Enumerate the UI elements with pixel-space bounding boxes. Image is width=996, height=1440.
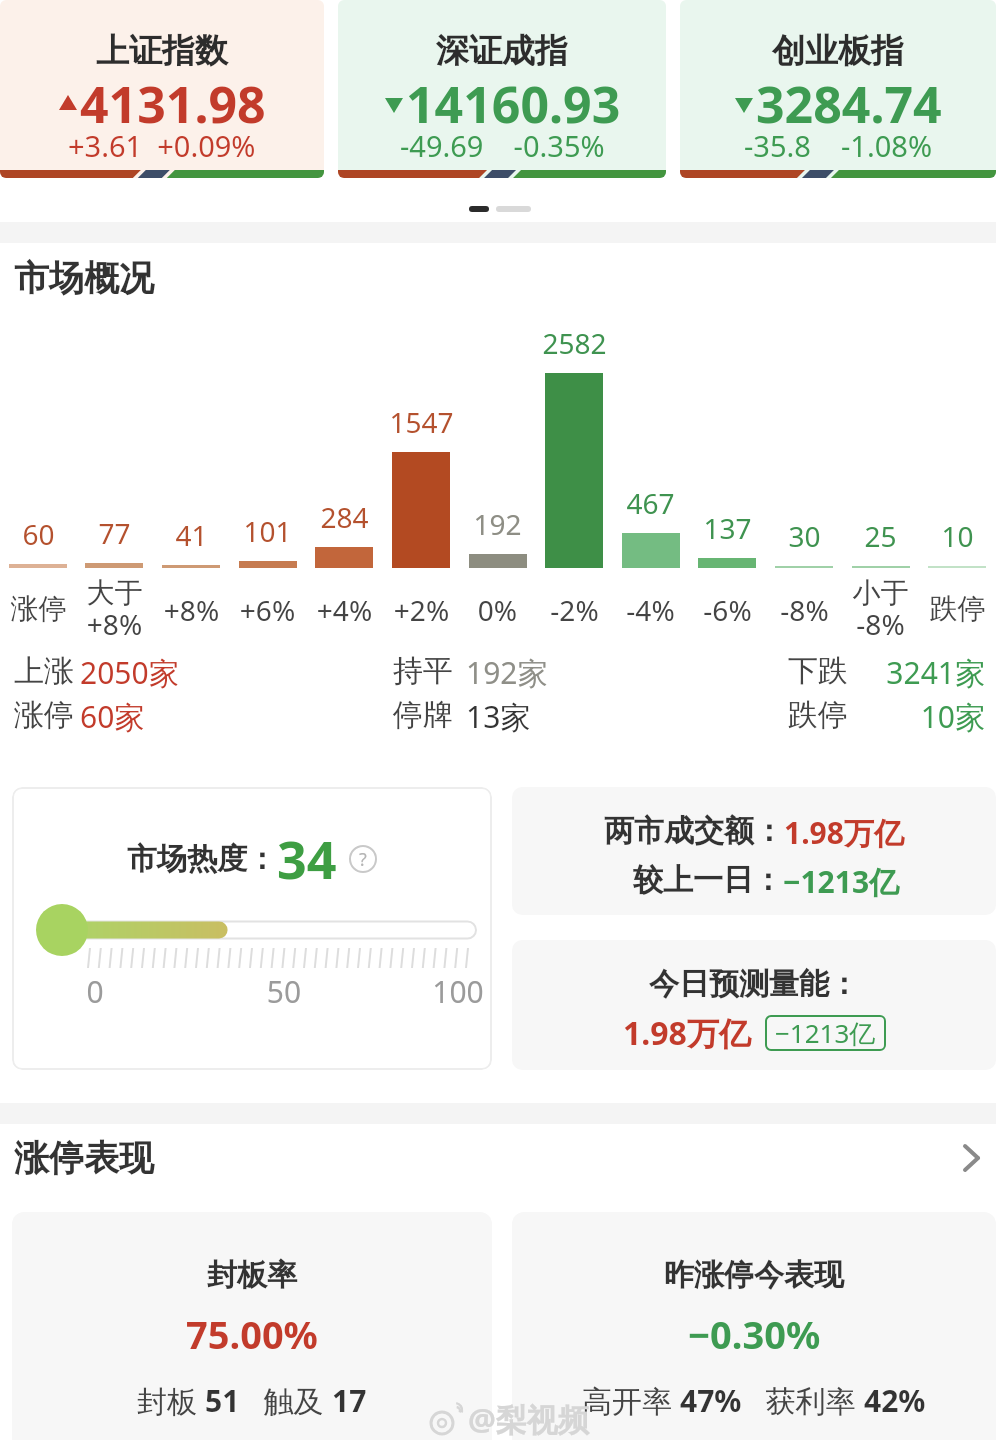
staticText: 封板率 — [207, 1256, 297, 1294]
staticText: +4% — [300, 591, 389, 629]
button[interactable]: 创业板指 — [680, 0, 996, 178]
staticText: 284 — [306, 498, 383, 536]
button[interactable]: 涨停表现 — [14, 1136, 982, 1180]
staticText: +2% — [377, 591, 466, 629]
staticText: 封板 — [137, 1380, 205, 1421]
staticText: 2582 — [536, 324, 613, 362]
staticText: 涨停 — [14, 696, 996, 734]
staticText: 触及 — [240, 1380, 332, 1421]
staticText: 10 — [919, 517, 996, 555]
staticText: 1547 — [383, 403, 460, 441]
staticText: 42% — [864, 1380, 926, 1421]
staticText: -4% — [606, 591, 695, 629]
staticText: 大于 +8% — [70, 575, 159, 643]
staticText: +8% — [147, 591, 236, 629]
staticText: 467 — [612, 484, 689, 522]
staticText: 60 — [0, 515, 77, 553]
staticText: 34 — [277, 823, 337, 894]
staticText: ? — [359, 847, 367, 872]
staticText: 1.98万亿 — [784, 812, 904, 853]
staticText: 17 — [332, 1380, 367, 1421]
staticText: 涨停 — [0, 591, 83, 626]
staticText: 深证成指 — [436, 30, 568, 72]
staticText: 41 — [153, 516, 230, 554]
staticText: -2% — [530, 591, 619, 629]
staticText: 192 — [459, 505, 536, 543]
staticText: 60家 — [80, 696, 996, 737]
staticText: 创业板指 — [772, 30, 904, 72]
staticText: 3284.74 — [756, 70, 942, 138]
button[interactable]: 深证成指 — [338, 0, 666, 178]
button[interactable]: 上证指数 — [0, 0, 324, 178]
button[interactable]: 今日预测量能： — [512, 940, 996, 1070]
staticText: 0% — [453, 591, 542, 629]
staticText: 较上一日： — [633, 861, 783, 899]
staticText: 75.00% — [186, 1308, 318, 1360]
staticText: −1213亿 — [775, 1015, 876, 1051]
staticText: 192家 — [466, 652, 996, 693]
staticText: -8% — [760, 591, 849, 629]
staticText: 市场热度： — [127, 840, 277, 878]
staticText: 昨涨停今表现 — [664, 1256, 844, 1294]
staticText: 3241家 — [858, 652, 985, 693]
staticText: 市场概况 — [14, 256, 996, 300]
staticText: 停牌 — [393, 696, 996, 734]
staticText: 上涨 — [14, 652, 996, 690]
button[interactable]: 市场热度： — [12, 787, 492, 1070]
staticText: 获利率 — [742, 1380, 864, 1421]
staticText: -6% — [683, 591, 772, 629]
staticText: 137 — [689, 509, 766, 547]
staticText: 30 — [766, 517, 843, 555]
staticText: 100 — [418, 971, 492, 1012]
staticText: 下跌 — [788, 652, 996, 690]
staticText: +3.61 +0.09% — [68, 126, 256, 165]
staticText: +6% — [223, 591, 312, 629]
staticText: 1.98万亿 — [623, 1011, 751, 1055]
staticText: 0 — [60, 971, 130, 1012]
staticText: 101 — [229, 512, 306, 550]
staticText: 25 — [842, 517, 919, 555]
staticText: 2050家 — [80, 652, 996, 693]
staticText: 小于 -8% — [836, 575, 925, 643]
staticText: 跌停 — [788, 696, 996, 734]
staticText: 50 — [249, 971, 319, 1012]
staticText: 高开率 — [582, 1380, 680, 1421]
staticText: −0.30% — [688, 1308, 821, 1360]
staticText: 51 — [205, 1380, 240, 1421]
staticText: 涨停表现 — [14, 1136, 154, 1180]
button[interactable]: 昨涨停今表现 — [512, 1212, 996, 1440]
staticText: 13家 — [466, 696, 996, 737]
staticText: 今日预测量能： — [649, 965, 859, 1003]
staticText: 10家 — [858, 696, 985, 737]
staticText: 两市成交额： — [604, 812, 784, 850]
button[interactable]: 两市成交额： — [512, 787, 996, 915]
staticText: 14160.93 — [406, 70, 621, 138]
button[interactable]: 封板率 — [12, 1212, 492, 1440]
staticText: 4131.98 — [80, 70, 266, 138]
staticText: -49.69 -0.35% — [400, 126, 605, 165]
staticText: 持平 — [393, 652, 996, 690]
staticText: 47% — [680, 1380, 742, 1421]
staticText: 77 — [76, 514, 153, 552]
staticText: −1213亿 — [783, 861, 900, 902]
staticText: @梨视频 — [468, 1398, 589, 1440]
staticText: 上证指数 — [96, 30, 228, 72]
staticText: 跌停 — [913, 591, 996, 626]
staticText: -35.8 -1.08% — [744, 126, 933, 165]
